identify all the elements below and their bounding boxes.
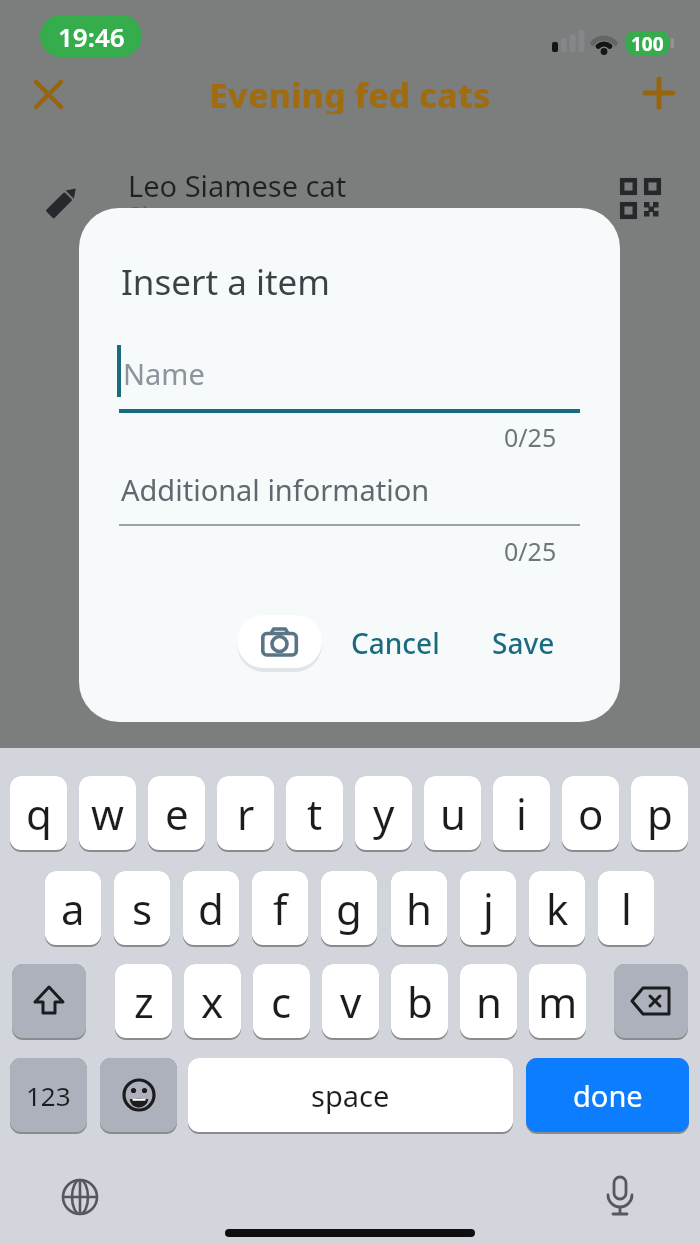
button[interactable]: space bbox=[188, 1058, 513, 1132]
staticText: p bbox=[647, 785, 673, 842]
staticText: 0/25 bbox=[504, 534, 557, 562]
button[interactable]: y bbox=[355, 776, 412, 850]
button[interactable]: a bbox=[45, 871, 101, 945]
staticText: o bbox=[578, 785, 604, 842]
button[interactable]: f bbox=[252, 871, 308, 945]
staticText: j bbox=[483, 880, 494, 937]
staticText: k bbox=[546, 880, 569, 937]
button[interactable]: w bbox=[79, 776, 136, 850]
staticText: done bbox=[573, 1076, 643, 1115]
staticText: d bbox=[198, 880, 224, 937]
button[interactable]: q bbox=[10, 776, 67, 850]
button[interactable]: r bbox=[217, 776, 274, 850]
staticText: q bbox=[26, 785, 52, 842]
staticText: v bbox=[340, 973, 362, 1030]
staticText: e bbox=[165, 785, 189, 842]
button[interactable] bbox=[237, 615, 322, 668]
staticText: g bbox=[336, 880, 362, 937]
staticText: 100 bbox=[631, 31, 664, 55]
button[interactable]: n bbox=[460, 964, 517, 1038]
staticText: y bbox=[373, 785, 395, 842]
button[interactable]: b bbox=[391, 964, 448, 1038]
staticText: t bbox=[307, 785, 323, 842]
button[interactable]: c bbox=[253, 964, 310, 1038]
staticText: l bbox=[621, 880, 632, 937]
button[interactable] bbox=[12, 964, 86, 1038]
button[interactable]: Cancel bbox=[345, 622, 445, 664]
button[interactable]: x bbox=[184, 964, 241, 1038]
button[interactable]: i bbox=[493, 776, 550, 850]
staticText: m bbox=[538, 973, 578, 1030]
staticText: n bbox=[476, 973, 502, 1030]
staticText: Additional information bbox=[121, 470, 430, 504]
button[interactable] bbox=[100, 1058, 177, 1132]
staticText: h bbox=[406, 880, 432, 937]
button[interactable]: 123 bbox=[10, 1058, 87, 1132]
button[interactable] bbox=[614, 964, 688, 1038]
button[interactable] bbox=[28, 74, 68, 114]
staticText: u bbox=[440, 785, 466, 842]
button[interactable]: e bbox=[148, 776, 205, 850]
button[interactable]: k bbox=[529, 871, 585, 945]
button[interactable]: o bbox=[562, 776, 619, 850]
staticText: 123 bbox=[26, 1078, 71, 1113]
staticText: f bbox=[273, 880, 288, 937]
staticText: a bbox=[61, 880, 85, 937]
button[interactable]: j bbox=[460, 871, 516, 945]
staticText: x bbox=[201, 973, 224, 1030]
button[interactable]: g bbox=[321, 871, 377, 945]
button[interactable]: m bbox=[529, 964, 586, 1038]
button[interactable]: u bbox=[424, 776, 481, 850]
staticText: b bbox=[407, 973, 433, 1030]
staticText: Name bbox=[123, 354, 205, 388]
staticText: Save bbox=[492, 624, 555, 662]
button[interactable]: h bbox=[391, 871, 447, 945]
staticText: Insert a item bbox=[121, 258, 331, 306]
staticText: i bbox=[516, 785, 527, 842]
staticText: 0/25 bbox=[504, 420, 557, 448]
button[interactable]: z bbox=[115, 964, 172, 1038]
button[interactable]: s bbox=[114, 871, 170, 945]
staticText: Cancel bbox=[351, 624, 440, 662]
button[interactable]: l bbox=[598, 871, 654, 945]
button[interactable]: done bbox=[526, 1058, 689, 1132]
staticText: z bbox=[134, 973, 154, 1030]
staticText: Siamese bbox=[128, 198, 226, 228]
staticText: r bbox=[237, 785, 255, 842]
staticText: space bbox=[311, 1076, 390, 1115]
button[interactable]: t bbox=[286, 776, 343, 850]
staticText: Evening fed cats bbox=[209, 72, 491, 114]
staticText: s bbox=[132, 880, 153, 937]
staticText: 19:46 bbox=[58, 19, 125, 54]
button[interactable]: v bbox=[322, 964, 379, 1038]
staticText: Leo Siamese cat bbox=[128, 166, 347, 200]
staticText: c bbox=[271, 973, 292, 1030]
button[interactable] bbox=[640, 74, 680, 114]
button[interactable]: d bbox=[183, 871, 239, 945]
button[interactable]: p bbox=[631, 776, 688, 850]
button[interactable]: Save bbox=[477, 622, 569, 664]
staticText: w bbox=[91, 785, 125, 842]
